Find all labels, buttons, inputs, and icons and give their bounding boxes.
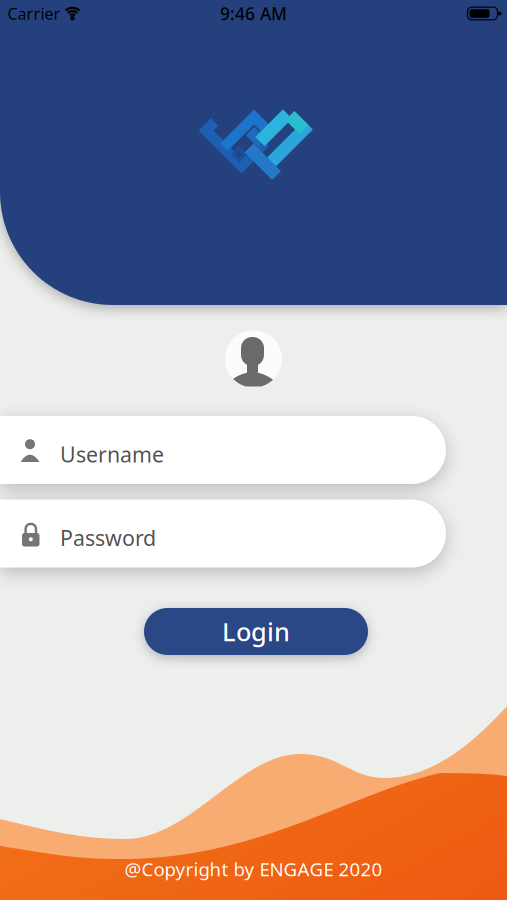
button[interactable]: Password [0,499,446,567]
staticText: @Copyright by ENGAGE 2020 [124,857,382,881]
button[interactable]: Username [0,416,446,484]
staticText: Username [60,440,164,468]
staticText: Login [222,615,290,648]
staticText: 9:46 AM [220,2,287,25]
staticText: Password [60,523,156,552]
staticText: Carrier [7,3,60,24]
button[interactable]: Login [144,608,368,655]
